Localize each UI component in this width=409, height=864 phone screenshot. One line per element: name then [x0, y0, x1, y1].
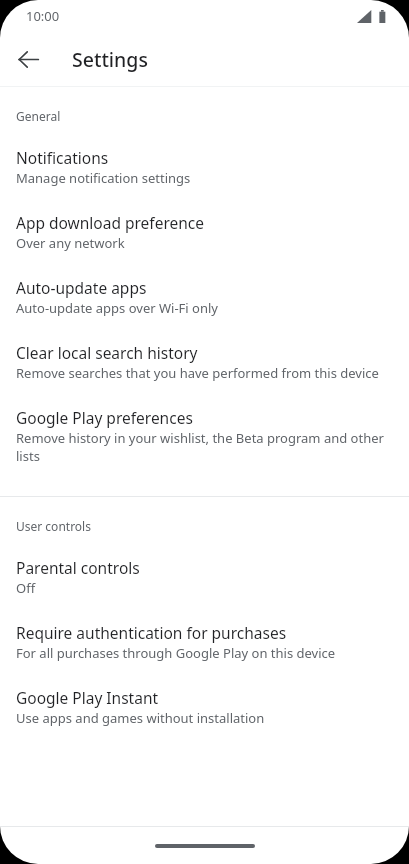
staticText: App download preference	[16, 212, 205, 233]
staticText: Require authentication for purchases	[16, 622, 287, 643]
staticText: Notifications	[16, 147, 109, 168]
staticText: Parental controls	[16, 557, 140, 578]
staticText: Remove searches that you have performed …	[16, 364, 379, 382]
staticText: User controls	[16, 518, 91, 534]
button[interactable]: Parental controls	[0, 545, 409, 610]
button[interactable]: Notifications	[0, 135, 409, 200]
staticText: Over any network	[16, 234, 125, 252]
staticText: Use apps and games without installation	[16, 709, 265, 727]
button[interactable]: Google Play preferences	[0, 395, 409, 478]
button[interactable]: Home gesture bar	[155, 844, 255, 848]
button[interactable]: App download preference	[0, 200, 409, 265]
staticText: Settings	[72, 46, 148, 73]
staticText: 10:00	[26, 7, 60, 25]
staticText: General	[16, 108, 61, 124]
button[interactable]: Back	[6, 37, 50, 81]
staticText: Google Play preferences	[16, 407, 193, 428]
button[interactable]: Google Play Instant	[0, 675, 409, 740]
staticText: Auto-update apps	[16, 277, 147, 298]
staticText: Auto-update apps over Wi-Fi only	[16, 299, 218, 317]
button[interactable]: Auto-update apps	[0, 265, 409, 330]
staticText: Remove history in your wishlist, the Bet…	[16, 429, 387, 465]
staticText: Off	[16, 579, 36, 597]
button[interactable]: Require authentication for purchases	[0, 610, 409, 675]
staticText: Manage notification settings	[16, 169, 191, 187]
staticText: For all purchases through Google Play on…	[16, 644, 336, 662]
staticText: Clear local search history	[16, 342, 198, 363]
button[interactable]: Clear local search history	[0, 330, 409, 395]
staticText: Google Play Instant	[16, 687, 159, 708]
